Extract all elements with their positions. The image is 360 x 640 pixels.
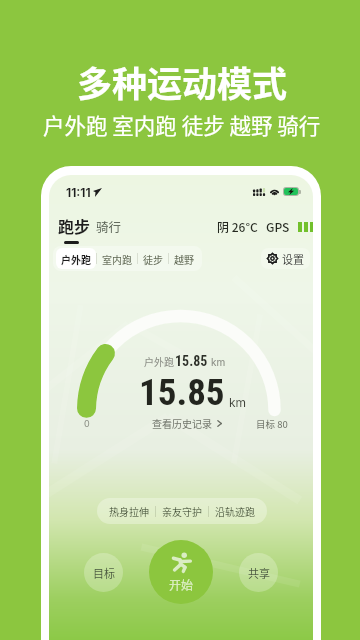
staticText: 热身拉伸	[109, 504, 149, 518]
button[interactable]: 亲友守护	[156, 500, 208, 522]
staticText: 徒步	[143, 252, 163, 266]
staticText: 户外跑	[61, 252, 91, 266]
staticText: 沿轨迹跑	[215, 504, 255, 518]
button[interactable]: 越野	[169, 248, 199, 269]
button[interactable]: 室内跑	[97, 248, 137, 269]
staticText: km	[229, 395, 247, 410]
button[interactable]: 设置	[261, 248, 310, 269]
button[interactable]: 查看历史记录	[152, 416, 224, 430]
staticText: 户外跑 室内跑 徒步 越野 骑行	[43, 109, 321, 140]
button[interactable]: 共享	[239, 553, 278, 592]
staticText: km	[211, 356, 226, 368]
button[interactable]: 骑行	[96, 217, 122, 235]
staticText: 阴 26°C	[217, 218, 258, 235]
button[interactable]: 开始	[149, 540, 213, 604]
staticText: 开始	[169, 576, 194, 593]
staticText: 0	[84, 418, 90, 429]
button[interactable]: 热身拉伸	[103, 500, 155, 522]
staticText: 设置	[282, 251, 304, 267]
staticText: 15.85	[175, 353, 208, 369]
staticText: 户外跑	[144, 354, 174, 368]
button[interactable]: 徒步	[138, 248, 168, 269]
staticText: 目标 80	[256, 417, 288, 431]
staticText: 多种运动模式	[77, 56, 288, 107]
staticText: 11:11	[66, 185, 91, 200]
staticText: 跑步	[58, 214, 91, 237]
staticText: 查看历史记录	[152, 416, 212, 430]
button[interactable]: 目标	[84, 553, 123, 592]
staticText: 目标	[93, 565, 115, 581]
staticText: 室内跑	[102, 252, 132, 266]
staticText: GPS	[266, 218, 290, 235]
staticText: 15.85	[139, 371, 225, 414]
button[interactable]: 沿轨迹跑	[209, 500, 261, 522]
button[interactable]: 跑步	[58, 214, 91, 244]
button[interactable]: 户外跑	[56, 248, 96, 269]
staticText: 共享	[248, 565, 270, 581]
staticText: 越野	[174, 252, 194, 266]
staticText: 亲友守护	[162, 504, 202, 518]
